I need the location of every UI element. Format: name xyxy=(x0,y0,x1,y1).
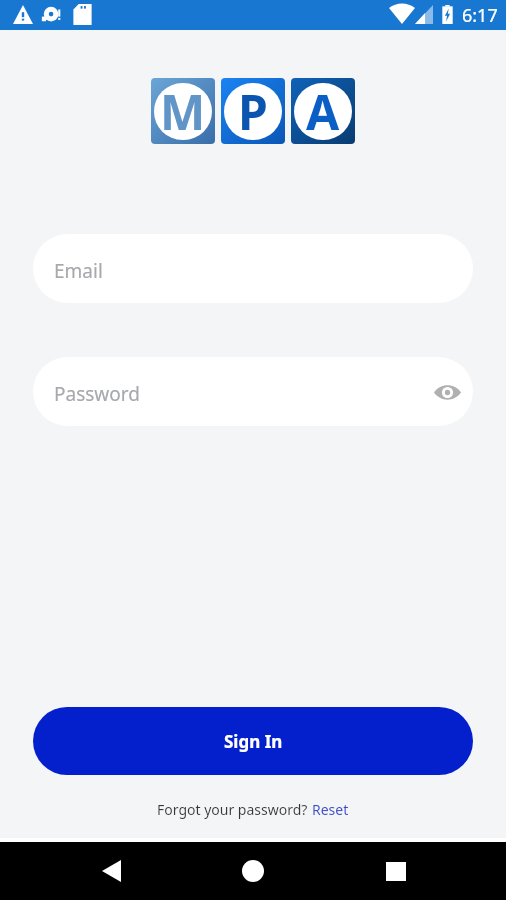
button[interactable]: Recents xyxy=(372,847,420,895)
button[interactable]: Sign In xyxy=(33,707,473,775)
button[interactable]: Back xyxy=(87,847,135,895)
staticText: P xyxy=(238,83,268,136)
staticText: Password xyxy=(54,381,140,407)
button[interactable]: Email xyxy=(33,234,473,303)
staticText: M xyxy=(160,83,206,136)
button[interactable]: Password xyxy=(33,357,473,426)
button[interactable]: Show password xyxy=(429,374,465,410)
staticText: 6:17 xyxy=(462,3,498,28)
staticText: Email xyxy=(54,258,103,284)
staticText: Forgot your password? xyxy=(157,800,312,819)
staticText: A xyxy=(306,83,340,136)
button[interactable]: Home xyxy=(229,847,277,895)
staticText: Sign In xyxy=(224,730,283,753)
staticText: Reset xyxy=(312,800,349,819)
button[interactable]: Reset xyxy=(312,800,349,819)
